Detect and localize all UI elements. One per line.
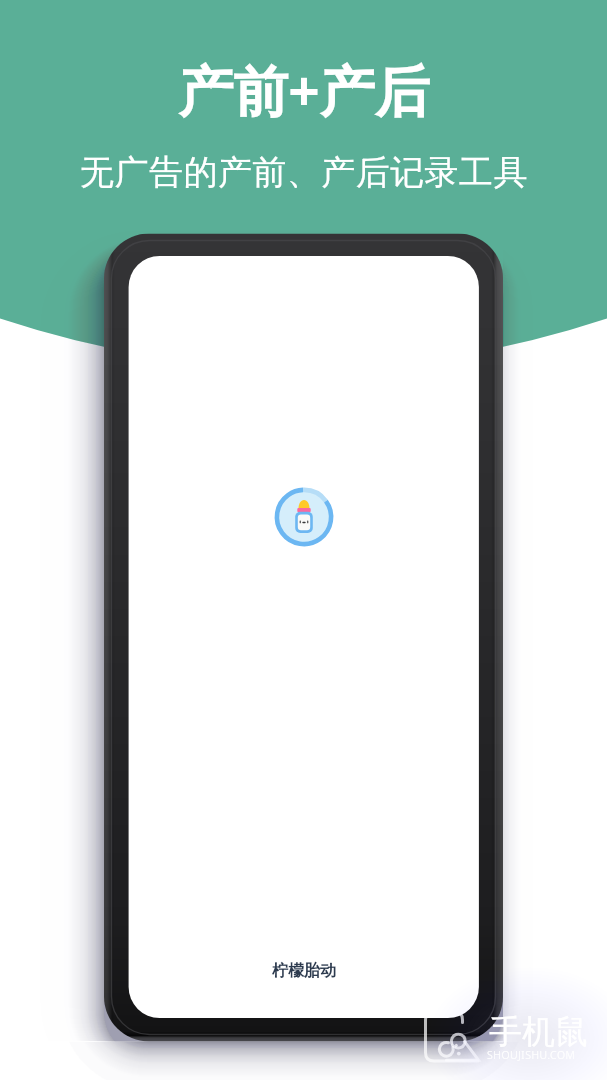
staticText: 产前+产后 [178, 52, 430, 127]
staticText: 柠檬胎动 [272, 961, 336, 981]
staticText: SHOUJISHU.COM [487, 1048, 576, 1062]
button[interactable]: 柠檬胎动 app icon [274, 487, 334, 547]
staticText: 无广告的产前、产后记录工具 [80, 151, 528, 194]
staticText: 手机鼠 [489, 1011, 588, 1053]
button[interactable]: shoujishu.com 手机鼠 [424, 1008, 596, 1068]
